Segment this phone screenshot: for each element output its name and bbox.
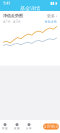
staticText: 近1月: [3, 20, 11, 23]
staticText: 收藏: [14, 127, 20, 130]
staticText: 分享: [26, 127, 32, 130]
button[interactable]: 客服: [0, 120, 11, 133]
staticText: 更多 ›: [47, 13, 57, 18]
button[interactable]: 立即购买: [43, 123, 59, 129]
staticText: 立即购买: [43, 124, 59, 129]
staticText: 9:41: [3, 0, 10, 6]
staticText: ▮▮ ◗: [50, 1, 57, 5]
staticText: 近3月: [13, 20, 21, 23]
staticText: 净值走势图: [3, 13, 23, 18]
staticText: 收益走势: [45, 20, 57, 23]
button[interactable]: 分享: [23, 120, 35, 133]
staticText: 基金详情: [20, 5, 40, 12]
staticText: 客服: [2, 127, 8, 130]
button[interactable]: 收藏: [11, 120, 23, 133]
